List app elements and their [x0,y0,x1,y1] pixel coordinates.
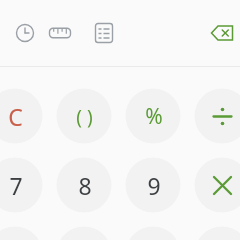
button[interactable]: History [9,17,41,49]
staticText: C [8,101,23,132]
button[interactable]: Backspace [206,17,238,49]
staticText: 8 [78,170,92,201]
button[interactable]: 4 [0,227,43,240]
button[interactable]: Subtract [195,227,240,240]
button[interactable]: C [0,89,43,144]
button[interactable]: Unit converter [44,17,76,49]
staticText: ( ) [76,104,93,130]
button[interactable]: 9 [126,158,181,213]
button[interactable]: Multiply [195,158,240,213]
button[interactable]: 5 [57,227,112,240]
button[interactable]: 7 [0,158,43,213]
staticText: % [145,102,163,131]
staticText: 7 [9,170,23,201]
staticText: 9 [147,170,161,201]
button[interactable]: Calculation list [88,17,120,49]
button[interactable]: Divide [195,89,240,144]
button[interactable]: 6 [126,227,181,240]
button[interactable]: 8 [57,158,112,213]
button[interactable]: ( ) [57,89,112,144]
button[interactable]: % [126,89,181,144]
